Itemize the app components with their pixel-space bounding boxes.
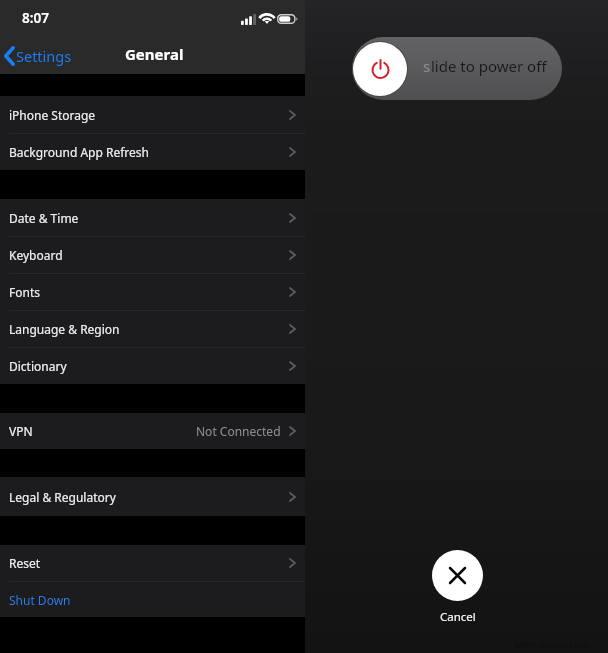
staticText: Dictionary: [9, 358, 67, 374]
staticText: Not Connected: [196, 423, 281, 439]
button[interactable]: Keyboard: [0, 237, 305, 273]
staticText: Settings: [16, 46, 72, 66]
button[interactable]: Date & Time: [0, 199, 305, 236]
staticText: Cancel: [440, 609, 476, 625]
button[interactable]: Shut Down: [0, 582, 305, 617]
button[interactable]: Background App Refresh: [0, 134, 305, 170]
staticText: iPhone Storage: [9, 107, 96, 123]
staticText: General: [125, 44, 184, 64]
staticText: Fonts: [9, 284, 40, 300]
button[interactable]: VPN: [0, 413, 305, 449]
staticText: Date & Time: [9, 210, 79, 226]
staticText: VPN: [9, 423, 33, 439]
button[interactable]: s: [352, 37, 562, 100]
staticText: Background App Refresh: [9, 144, 149, 160]
staticText: Reset: [9, 555, 41, 571]
staticText: lide to power off: [431, 56, 547, 76]
staticText: 8:07: [22, 9, 49, 27]
staticText: Shut Down: [9, 592, 71, 608]
button[interactable]: Reset: [0, 545, 305, 581]
staticText: Keyboard: [9, 247, 63, 263]
button[interactable]: Cancel: [432, 550, 483, 625]
button[interactable]: Language & Region: [0, 311, 305, 347]
button[interactable]: iPhone Storage: [0, 96, 305, 133]
button[interactable]: Settings: [0, 42, 82, 70]
button[interactable]: Fonts: [0, 274, 305, 310]
staticText: Language & Region: [9, 321, 120, 337]
button[interactable]: Legal & Regulatory: [0, 477, 305, 516]
button[interactable]: Dictionary: [0, 348, 305, 384]
staticText: Legal & Regulatory: [9, 489, 116, 505]
staticText: s: [423, 56, 431, 76]
